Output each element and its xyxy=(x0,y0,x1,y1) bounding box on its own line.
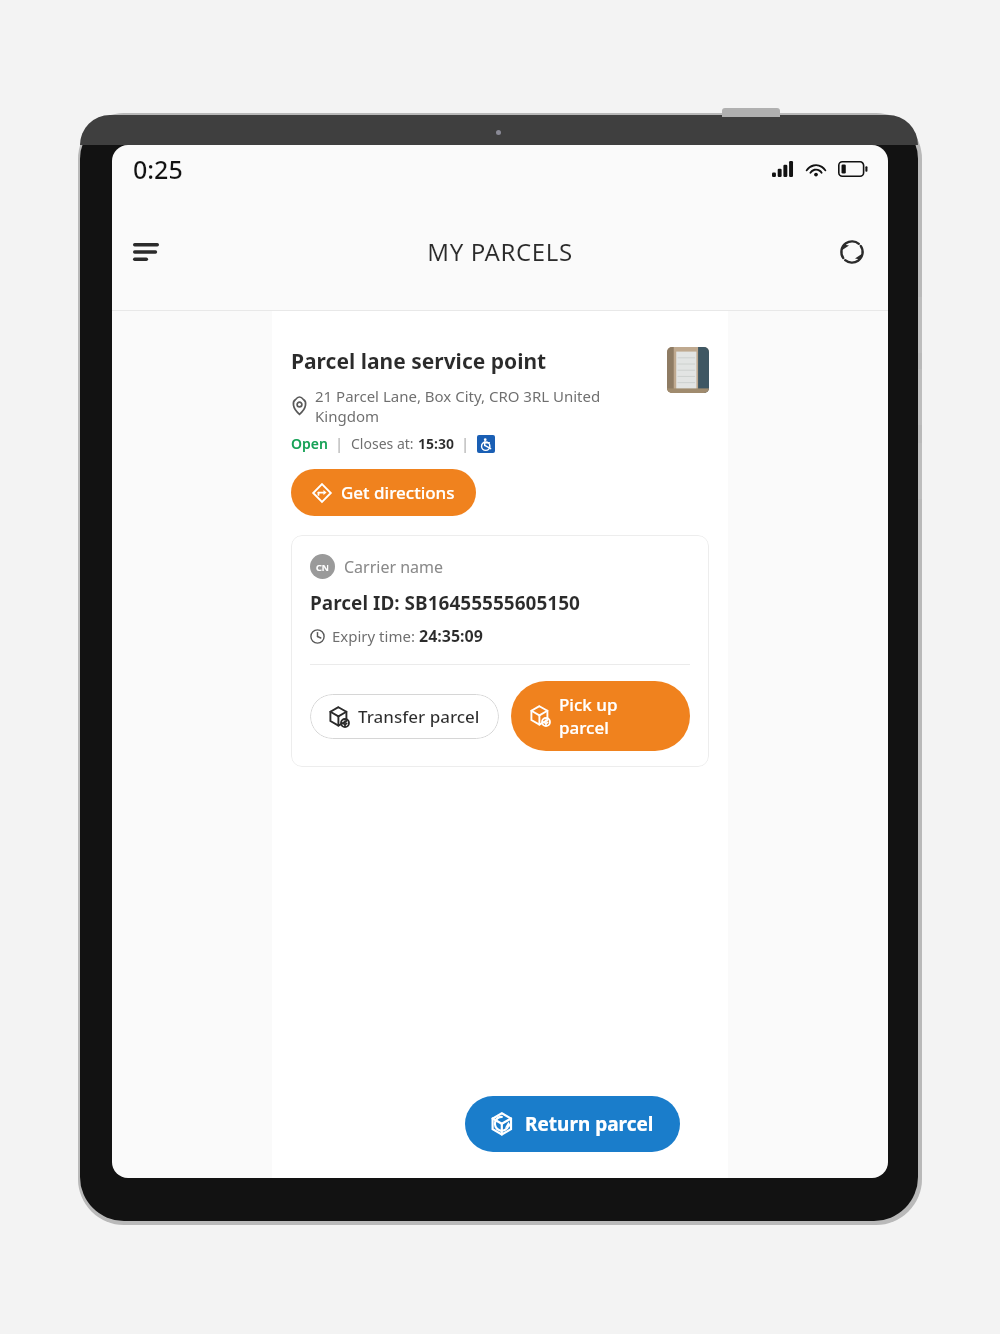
button[interactable]: Return parcel xyxy=(465,1096,680,1152)
staticText: Get directions xyxy=(341,481,455,504)
staticText: Carrier name xyxy=(344,556,444,578)
staticText: Return parcel xyxy=(525,1111,654,1137)
staticText: 0:25 xyxy=(133,152,183,186)
button[interactable]: Refresh xyxy=(824,224,880,280)
staticText: CN xyxy=(316,561,329,573)
staticText: Closes at: xyxy=(351,434,418,453)
staticText: 21 Parcel Lane, Box City, CRO 3RL United… xyxy=(315,386,657,426)
button[interactable]: Get directions xyxy=(291,469,476,516)
staticText: 15:30 xyxy=(418,434,454,453)
staticText: Parcel ID: SB16455555605150 xyxy=(310,590,580,616)
staticText: Pick up parcel xyxy=(559,693,671,739)
button[interactable]: Pick up parcel xyxy=(511,681,690,751)
staticText: | xyxy=(454,434,477,453)
staticText: Open xyxy=(291,434,328,453)
staticText: Parcel lane service point xyxy=(291,347,547,376)
staticText: MY PARCELS xyxy=(427,235,573,268)
button[interactable]: Transfer parcel xyxy=(310,694,499,739)
staticText: Expiry time: xyxy=(332,626,419,646)
staticText: 24:35:09 xyxy=(419,625,483,647)
staticText: Transfer parcel xyxy=(358,705,480,728)
button[interactable]: Menu xyxy=(118,224,174,280)
staticText: | xyxy=(328,434,351,453)
